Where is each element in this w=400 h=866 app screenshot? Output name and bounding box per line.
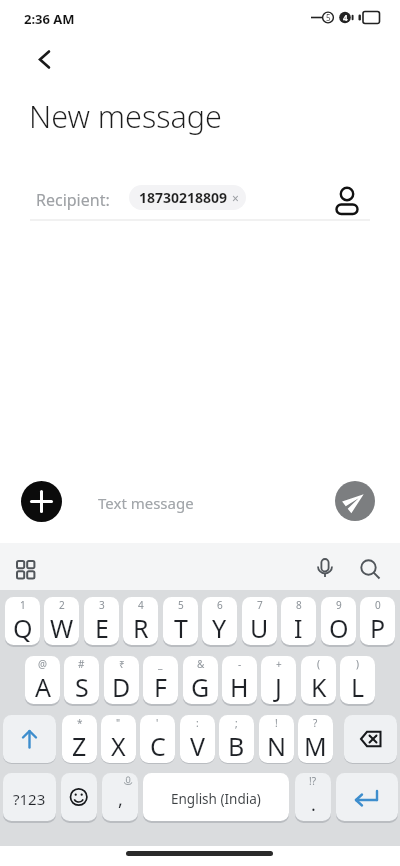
button[interactable] — [21, 481, 62, 522]
staticText: English (India) — [171, 790, 261, 808]
staticText: 2 — [59, 598, 65, 612]
button[interactable]: English (India) — [143, 773, 289, 821]
button[interactable]: , — [102, 773, 138, 821]
staticText: Y — [212, 611, 227, 645]
staticText: O — [329, 611, 349, 645]
button[interactable] — [352, 553, 388, 587]
staticText: ' — [156, 716, 159, 730]
button[interactable]: & — [183, 656, 218, 704]
staticText: 4 — [138, 598, 144, 612]
staticText: 1 — [20, 598, 26, 612]
button[interactable]: : — [180, 715, 215, 763]
button[interactable]: 1 — [5, 597, 40, 645]
staticText: # — [78, 657, 85, 671]
staticText: ( — [317, 657, 320, 671]
staticText: S — [75, 670, 89, 704]
button[interactable] — [332, 185, 362, 215]
button[interactable]: - — [222, 656, 257, 704]
staticText: !? — [309, 774, 317, 788]
button[interactable]: " — [101, 715, 136, 763]
staticText: W — [50, 611, 74, 645]
staticText: E — [95, 611, 109, 645]
staticText: V — [190, 729, 206, 763]
button[interactable]: 5 — [163, 597, 198, 645]
staticText: 7 — [257, 598, 263, 612]
button[interactable]: 18730218809 — [129, 185, 246, 210]
staticText: X — [111, 729, 126, 763]
staticText: G — [191, 670, 210, 704]
staticText: + — [276, 657, 282, 671]
staticText: × — [232, 190, 239, 206]
button[interactable]: ( — [301, 656, 336, 704]
button[interactable]: 3 — [84, 597, 119, 645]
staticText: 9 — [336, 598, 342, 612]
button[interactable] — [344, 715, 397, 763]
button[interactable]: 9 — [321, 597, 356, 645]
staticText: 5 — [326, 12, 331, 23]
staticText: 8 — [296, 598, 302, 612]
staticText: & — [197, 657, 205, 671]
staticText: L — [351, 670, 365, 704]
staticText: * — [77, 716, 83, 730]
staticText: B — [228, 729, 245, 763]
staticText: Z — [72, 729, 87, 763]
staticText: A — [35, 670, 51, 704]
staticText: ) — [356, 657, 359, 671]
staticText: I — [294, 611, 303, 645]
staticText: R — [133, 611, 149, 645]
staticText: M — [304, 729, 327, 763]
staticText: . — [311, 792, 316, 817]
staticText: 6 — [217, 598, 223, 612]
button[interactable]: ?123 — [3, 773, 56, 821]
button[interactable]: ₹ — [104, 656, 139, 704]
staticText: K — [311, 670, 327, 704]
staticText: ? — [313, 716, 318, 730]
button[interactable]: @ — [25, 656, 60, 704]
staticText: _ — [158, 657, 163, 671]
staticText: New message — [29, 95, 222, 137]
button[interactable]: ; — [219, 715, 254, 763]
staticText: 4 — [343, 12, 348, 23]
button[interactable] — [30, 45, 58, 73]
staticText: Text message — [98, 493, 194, 513]
button[interactable]: ) — [340, 656, 375, 704]
staticText: 5 — [178, 598, 184, 612]
button[interactable]: # — [64, 656, 99, 704]
button[interactable] — [336, 773, 398, 821]
button[interactable]: * — [62, 715, 97, 763]
staticText: , — [118, 787, 123, 812]
staticText: T — [174, 611, 188, 645]
staticText: 3 — [99, 598, 105, 612]
button[interactable]: 6 — [202, 597, 237, 645]
staticText: @ — [38, 657, 47, 671]
staticText: ₹ — [119, 657, 125, 671]
staticText: Recipient: — [36, 189, 110, 211]
staticText: U — [250, 611, 269, 645]
staticText: C — [150, 729, 166, 763]
button[interactable] — [308, 553, 342, 587]
staticText: ; — [235, 716, 238, 730]
button[interactable]: + — [261, 656, 296, 704]
staticText: ! — [275, 716, 278, 730]
button[interactable]: _ — [143, 656, 178, 704]
button[interactable] — [61, 773, 97, 821]
staticText: 0 — [375, 598, 381, 612]
button[interactable] — [8, 553, 44, 587]
button[interactable] — [335, 481, 375, 521]
staticText: " — [116, 716, 121, 730]
button[interactable]: ' — [140, 715, 175, 763]
button[interactable]: 4 — [123, 597, 158, 645]
staticText: Q — [13, 611, 33, 645]
staticText: P — [370, 611, 386, 645]
button[interactable]: 8 — [281, 597, 316, 645]
button[interactable]: ! — [259, 715, 294, 763]
button[interactable]: 0 — [360, 597, 395, 645]
staticText: ?123 — [13, 789, 46, 809]
button[interactable]: 7 — [242, 597, 277, 645]
button[interactable]: ? — [298, 715, 333, 763]
button[interactable]: !? — [295, 773, 331, 821]
staticText: J — [275, 670, 282, 704]
button[interactable] — [3, 715, 56, 763]
button[interactable]: 2 — [44, 597, 79, 645]
staticText: F — [154, 670, 167, 704]
